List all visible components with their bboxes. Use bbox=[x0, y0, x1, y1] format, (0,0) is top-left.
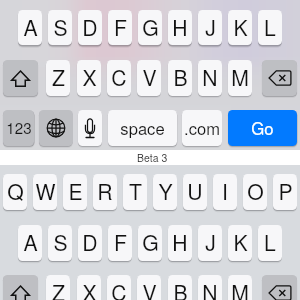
button[interactable]: X bbox=[77, 60, 101, 96]
staticText: D bbox=[82, 12, 98, 42]
staticText: T bbox=[129, 176, 142, 206]
staticText: B bbox=[173, 277, 188, 300]
staticText: .com bbox=[184, 116, 220, 140]
staticText: I bbox=[222, 176, 228, 206]
staticText: X bbox=[82, 62, 97, 92]
button[interactable]: O bbox=[243, 174, 267, 210]
button[interactable]: Dictation bbox=[78, 110, 102, 146]
button[interactable]: Shift bbox=[3, 60, 38, 96]
staticText: D bbox=[82, 227, 98, 257]
staticText: L bbox=[264, 12, 276, 42]
button[interactable]: K bbox=[228, 225, 252, 261]
button[interactable]: Go bbox=[228, 110, 297, 146]
button[interactable]: G bbox=[138, 225, 162, 261]
staticText: H bbox=[172, 12, 188, 42]
button[interactable]: F bbox=[108, 225, 132, 261]
staticText: G bbox=[142, 12, 159, 42]
button[interactable]: N bbox=[198, 275, 222, 300]
staticText: K bbox=[233, 227, 248, 257]
button[interactable]: H bbox=[168, 10, 192, 45]
staticText: R bbox=[97, 176, 113, 206]
button[interactable]: Shift bbox=[3, 275, 38, 300]
staticText: Z bbox=[52, 62, 65, 92]
staticText: C bbox=[111, 62, 127, 92]
staticText: E bbox=[68, 176, 83, 206]
staticText: N bbox=[202, 277, 218, 300]
staticText: M bbox=[231, 62, 249, 92]
staticText: M bbox=[231, 277, 249, 300]
staticText: K bbox=[233, 12, 248, 42]
staticText: V bbox=[142, 62, 157, 92]
staticText: W bbox=[35, 176, 56, 206]
button[interactable]: J bbox=[198, 225, 222, 261]
staticText: 123 bbox=[6, 117, 32, 139]
button[interactable]: M bbox=[228, 60, 252, 96]
button[interactable]: D bbox=[78, 225, 102, 261]
button[interactable]: T bbox=[123, 174, 147, 210]
button[interactable]: space bbox=[108, 110, 177, 146]
button[interactable]: X bbox=[77, 275, 101, 300]
button[interactable]: Next keyboard bbox=[39, 110, 73, 146]
button[interactable]: E bbox=[63, 174, 87, 210]
button[interactable]: Z bbox=[46, 275, 70, 300]
button[interactable]: A bbox=[18, 10, 42, 45]
button[interactable]: W bbox=[33, 174, 57, 210]
button[interactable]: S bbox=[48, 225, 72, 261]
button[interactable]: 123 bbox=[3, 110, 34, 146]
button[interactable]: R bbox=[93, 174, 117, 210]
staticText: S bbox=[53, 227, 68, 257]
button[interactable]: A bbox=[18, 225, 42, 261]
staticText: Z bbox=[52, 277, 65, 300]
staticText: N bbox=[202, 62, 218, 92]
button[interactable]: J bbox=[198, 10, 222, 45]
button[interactable]: N bbox=[198, 60, 222, 96]
staticText: U bbox=[187, 176, 203, 206]
staticText: Beta 3 bbox=[137, 150, 168, 165]
button[interactable]: D bbox=[78, 10, 102, 45]
staticText: J bbox=[205, 227, 216, 257]
button[interactable]: Z bbox=[46, 60, 70, 96]
staticText: Go bbox=[251, 116, 274, 140]
staticText: J bbox=[205, 12, 216, 42]
staticText: X bbox=[82, 277, 97, 300]
button[interactable]: H bbox=[168, 225, 192, 261]
staticText: L bbox=[264, 227, 276, 257]
staticText: F bbox=[114, 12, 127, 42]
button[interactable]: Q bbox=[3, 174, 27, 210]
button[interactable]: F bbox=[108, 10, 132, 45]
button[interactable]: Y bbox=[153, 174, 177, 210]
button[interactable]: C bbox=[107, 275, 131, 300]
button[interactable]: B bbox=[168, 60, 192, 96]
staticText: G bbox=[142, 227, 159, 257]
staticText: C bbox=[111, 277, 127, 300]
staticText: A bbox=[23, 227, 38, 257]
staticText: O bbox=[247, 176, 264, 206]
staticText: H bbox=[172, 227, 188, 257]
staticText: space bbox=[120, 116, 165, 140]
button[interactable]: V bbox=[137, 275, 161, 300]
staticText: Y bbox=[158, 176, 173, 206]
staticText: A bbox=[23, 12, 38, 42]
button[interactable]: U bbox=[183, 174, 207, 210]
staticText: P bbox=[278, 176, 293, 206]
button[interactable]: .com bbox=[182, 110, 222, 146]
staticText: B bbox=[173, 62, 188, 92]
button[interactable]: L bbox=[258, 10, 282, 45]
staticText: Q bbox=[7, 176, 24, 206]
button[interactable]: Backspace bbox=[262, 60, 297, 96]
button[interactable]: S bbox=[48, 10, 72, 45]
button[interactable]: C bbox=[107, 60, 131, 96]
button[interactable]: Backspace bbox=[262, 275, 297, 300]
button[interactable]: P bbox=[273, 174, 297, 210]
staticText: F bbox=[114, 227, 127, 257]
staticText: S bbox=[53, 12, 68, 42]
button[interactable]: L bbox=[258, 225, 282, 261]
button[interactable]: I bbox=[213, 174, 237, 210]
button[interactable]: M bbox=[228, 275, 252, 300]
button[interactable]: G bbox=[138, 10, 162, 45]
button[interactable]: V bbox=[137, 60, 161, 96]
button[interactable]: K bbox=[228, 10, 252, 45]
button[interactable]: B bbox=[168, 275, 192, 300]
staticText: V bbox=[142, 277, 157, 300]
